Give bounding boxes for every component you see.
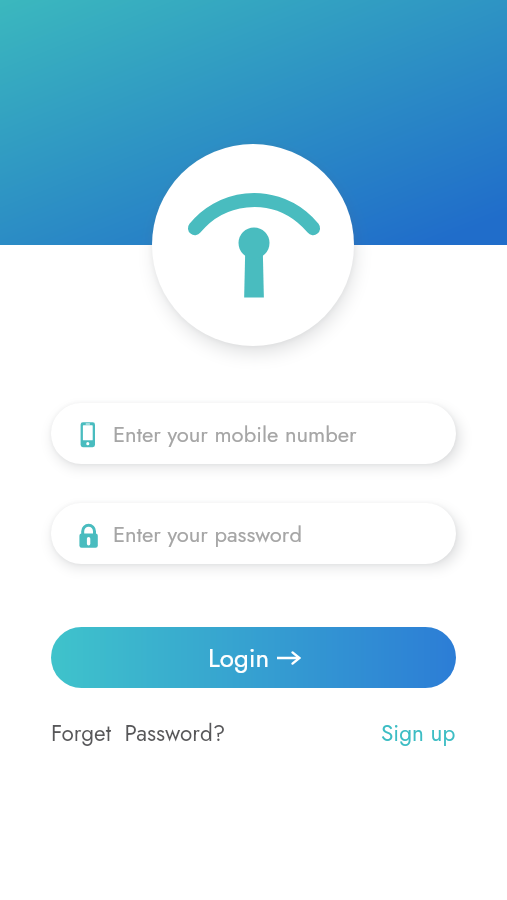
button[interactable]: Enter your password: [51, 503, 456, 564]
button[interactable]: Forget Password?: [51, 717, 226, 750]
button[interactable]: Login: [51, 627, 456, 688]
button[interactable]: Enter your mobile number: [51, 403, 456, 464]
staticText: Login: [208, 639, 270, 677]
button[interactable]: Sign up: [381, 717, 456, 750]
staticText: Enter your mobile number: [113, 418, 357, 450]
staticText: Enter your password: [113, 518, 302, 550]
